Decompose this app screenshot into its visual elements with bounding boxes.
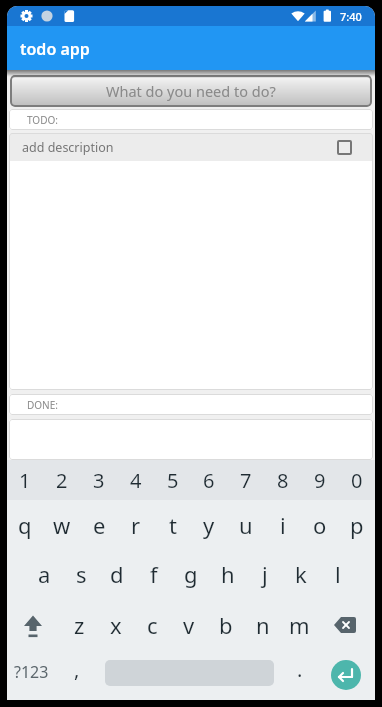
staticText: 7:40 (340, 9, 362, 24)
staticText: 4 (130, 467, 142, 494)
button[interactable]: p (339, 504, 375, 546)
staticText: b (219, 610, 233, 640)
staticText: h (221, 559, 235, 589)
staticText: z (74, 610, 85, 640)
staticText: m (289, 610, 310, 640)
button[interactable]: i (265, 504, 301, 546)
button[interactable]: 8 (265, 459, 301, 501)
button[interactable]: w (44, 504, 80, 546)
button[interactable]: ?123 (13, 651, 49, 693)
staticText: What do you need to do? (106, 81, 276, 101)
button[interactable]: h (210, 553, 246, 595)
staticText: r (131, 510, 141, 540)
staticText: 2 (56, 467, 68, 494)
button[interactable]: 5 (155, 459, 191, 501)
staticText: . (297, 656, 303, 683)
staticText: 7 (240, 467, 252, 494)
staticText: w (53, 510, 71, 540)
staticText: q (18, 510, 32, 540)
button[interactable]: What do you need to do? (10, 75, 372, 107)
staticText: todo app (20, 38, 90, 60)
staticText: 3 (93, 467, 105, 494)
button[interactable]: x (98, 604, 134, 646)
staticText: c (147, 610, 158, 640)
staticText: x (110, 610, 122, 640)
staticText: g (184, 559, 198, 589)
button[interactable]: 1 (7, 459, 43, 501)
button[interactable]: m (281, 604, 317, 646)
button[interactable]: j (247, 553, 283, 595)
button[interactable]: q (7, 504, 43, 546)
button[interactable]: d (99, 553, 135, 595)
button[interactable] (325, 605, 365, 645)
button[interactable]: 4 (118, 459, 154, 501)
staticText: 9 (314, 467, 326, 494)
button[interactable]: n (245, 604, 281, 646)
staticText: j (262, 559, 268, 589)
button[interactable]: 9 (302, 459, 338, 501)
button[interactable]: g (173, 553, 209, 595)
button[interactable]: 3 (81, 459, 117, 501)
button[interactable]: f (136, 553, 172, 595)
staticText: l (335, 559, 341, 589)
button[interactable]: k (283, 553, 319, 595)
staticText: 5 (167, 467, 179, 494)
button[interactable]: c (134, 604, 170, 646)
button[interactable]: add description (9, 133, 373, 161)
button[interactable] (331, 660, 361, 690)
staticText: y (203, 510, 215, 540)
staticText: i (280, 510, 286, 540)
button[interactable]: 6 (191, 459, 227, 501)
staticText: t (169, 510, 177, 540)
button[interactable]: . (282, 648, 318, 690)
button[interactable]: , (59, 648, 95, 690)
staticText: 0 (351, 467, 363, 494)
staticText: , (74, 656, 80, 683)
button[interactable]: r (118, 504, 154, 546)
button[interactable]: 2 (44, 459, 80, 501)
staticText: 8 (277, 467, 289, 494)
button[interactable]: l (320, 553, 356, 595)
staticText: DONE: (27, 398, 58, 412)
staticText: s (76, 559, 87, 589)
staticText: e (93, 510, 106, 540)
button[interactable] (337, 140, 352, 155)
button[interactable]: o (302, 504, 338, 546)
staticText: o (313, 510, 327, 540)
staticText: d (110, 559, 124, 589)
staticText: v (183, 610, 195, 640)
button[interactable] (13, 605, 53, 645)
button[interactable]: 7 (228, 459, 264, 501)
button[interactable]: y (191, 504, 227, 546)
button[interactable]: b (208, 604, 244, 646)
button[interactable]: 0 (339, 459, 375, 501)
button[interactable]: e (81, 504, 117, 546)
staticText: 6 (203, 467, 215, 494)
button[interactable]: u (228, 504, 264, 546)
staticText: p (350, 510, 364, 540)
staticText: 1 (19, 467, 31, 494)
staticText: TODO: (27, 113, 58, 127)
button[interactable]: a (26, 553, 62, 595)
staticText: n (256, 610, 270, 640)
staticText: k (295, 559, 307, 589)
button[interactable]: z (61, 604, 97, 646)
staticText: a (38, 559, 51, 589)
staticText: ?123 (14, 661, 49, 683)
button[interactable]: s (63, 553, 99, 595)
staticText: f (150, 559, 158, 589)
staticText: add description (22, 139, 114, 156)
staticText: u (239, 510, 253, 540)
button[interactable]: v (171, 604, 207, 646)
button[interactable]: t (155, 504, 191, 546)
